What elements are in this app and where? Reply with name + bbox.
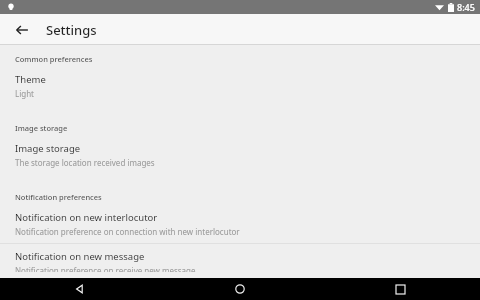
staticText: Notification preference on connection wi… xyxy=(15,226,240,237)
staticText: Image storage xyxy=(15,123,68,133)
staticText: The storage location received images xyxy=(15,157,155,168)
button[interactable]: Back xyxy=(0,278,160,300)
button[interactable]: Home xyxy=(160,278,320,300)
button[interactable]: Back xyxy=(9,17,35,43)
button[interactable]: Recent apps xyxy=(320,278,480,300)
staticText: Notification preferences xyxy=(15,192,102,202)
staticText: Image storage xyxy=(15,142,81,155)
staticText: Settings xyxy=(46,21,97,39)
staticText: Notification on new message xyxy=(15,250,145,263)
staticText: Theme xyxy=(15,73,46,86)
staticText: Common preferences xyxy=(15,54,93,64)
button[interactable]: Notification on new message xyxy=(0,244,480,278)
staticText: Notification on new interlocutor xyxy=(15,211,158,224)
button[interactable]: Image storage xyxy=(0,136,480,174)
staticText: Notification preference on receive new m… xyxy=(15,265,196,272)
button[interactable]: Theme xyxy=(0,67,480,105)
staticText: 8:45 xyxy=(457,1,475,13)
button[interactable]: Notification on new interlocutor xyxy=(0,205,480,243)
staticText: Light xyxy=(15,88,35,99)
